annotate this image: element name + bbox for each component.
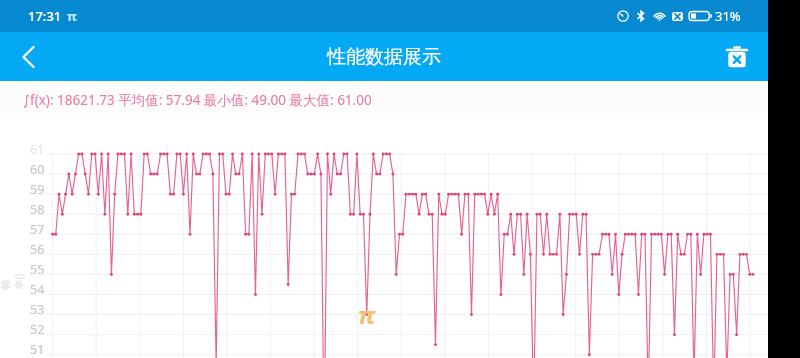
staticText: π [67, 7, 77, 25]
staticText: π [358, 298, 376, 331]
staticText: 58 [30, 201, 45, 218]
staticText: 52 [30, 321, 45, 338]
staticText: 59 [30, 181, 45, 198]
staticText: ∫f(x): 18621.73 平均值: 57.94 最小值: 49.00 最大… [23, 91, 372, 109]
staticText: 60 [30, 161, 45, 178]
staticText: 17:31 [28, 7, 62, 25]
staticText: 54 [30, 281, 45, 298]
staticText: 51 [30, 341, 45, 358]
staticText: 帧率() [0, 271, 25, 289]
staticText: 性能数据展示 [327, 45, 441, 69]
staticText: 61 [30, 141, 45, 158]
staticText: 31% [715, 7, 741, 25]
button[interactable]: Delete [720, 40, 754, 74]
staticText: 57 [30, 221, 45, 238]
staticText: 56 [30, 241, 45, 258]
button[interactable]: Back [8, 37, 48, 77]
staticText: 55 [30, 261, 45, 278]
staticText: 53 [30, 301, 45, 318]
